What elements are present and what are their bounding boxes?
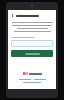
button[interactable]: Terms of service (19, 79, 31, 80)
button[interactable]: Privacy policy (34, 79, 46, 80)
button[interactable]: Info (11, 13, 53, 18)
button[interactable] (11, 50, 53, 57)
button[interactable]: Brand logo (11, 72, 53, 75)
button[interactable]: Email input (11, 40, 53, 47)
other: Info (11, 14, 14, 17)
